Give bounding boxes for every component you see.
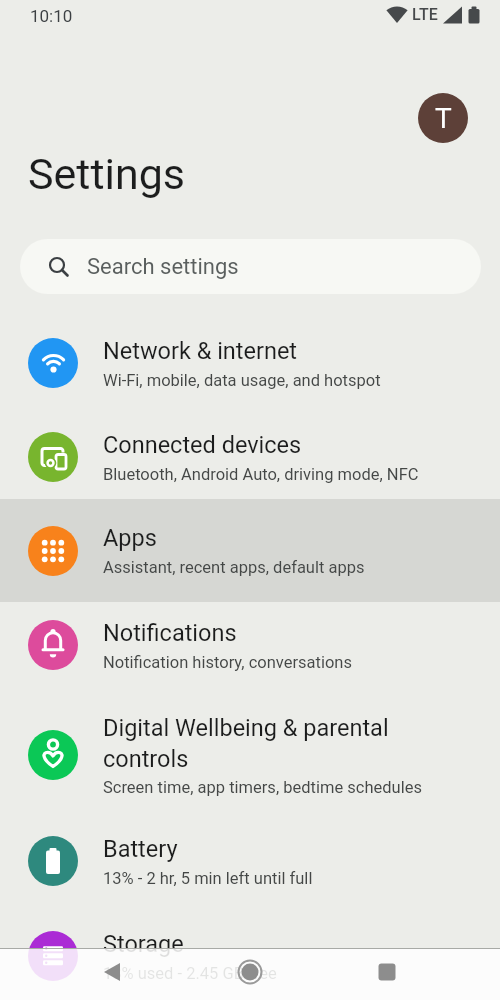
staticText: Wi-Fi, mobile, data usage, and hotspot [103, 371, 381, 390]
staticText: Notification history, conversations [103, 653, 352, 672]
staticText: Battery [103, 835, 178, 863]
staticText: 13% - 2 hr, 5 min left until full [103, 869, 313, 888]
staticText: Search settings [87, 254, 239, 280]
staticText: Network & internet [103, 337, 298, 365]
staticText: 13% used - 2.45 GB free [103, 964, 277, 983]
staticText: Settings [28, 149, 186, 199]
staticText: Screen time, app timers, bedtime schedul… [103, 778, 422, 797]
staticText: Apps [103, 524, 157, 552]
staticText: LTE [412, 5, 438, 24]
staticText: 10:10 [30, 6, 73, 26]
staticText: Notifications [103, 619, 237, 647]
staticText: T [435, 102, 452, 135]
staticText: Bluetooth, Android Auto, driving mode, N… [103, 465, 419, 484]
staticText: Storage [103, 930, 184, 958]
staticText: Connected devices [103, 431, 302, 459]
staticText: Assistant, recent apps, default apps [103, 558, 365, 577]
staticText: Digital Wellbeing & parental controls [103, 714, 389, 772]
